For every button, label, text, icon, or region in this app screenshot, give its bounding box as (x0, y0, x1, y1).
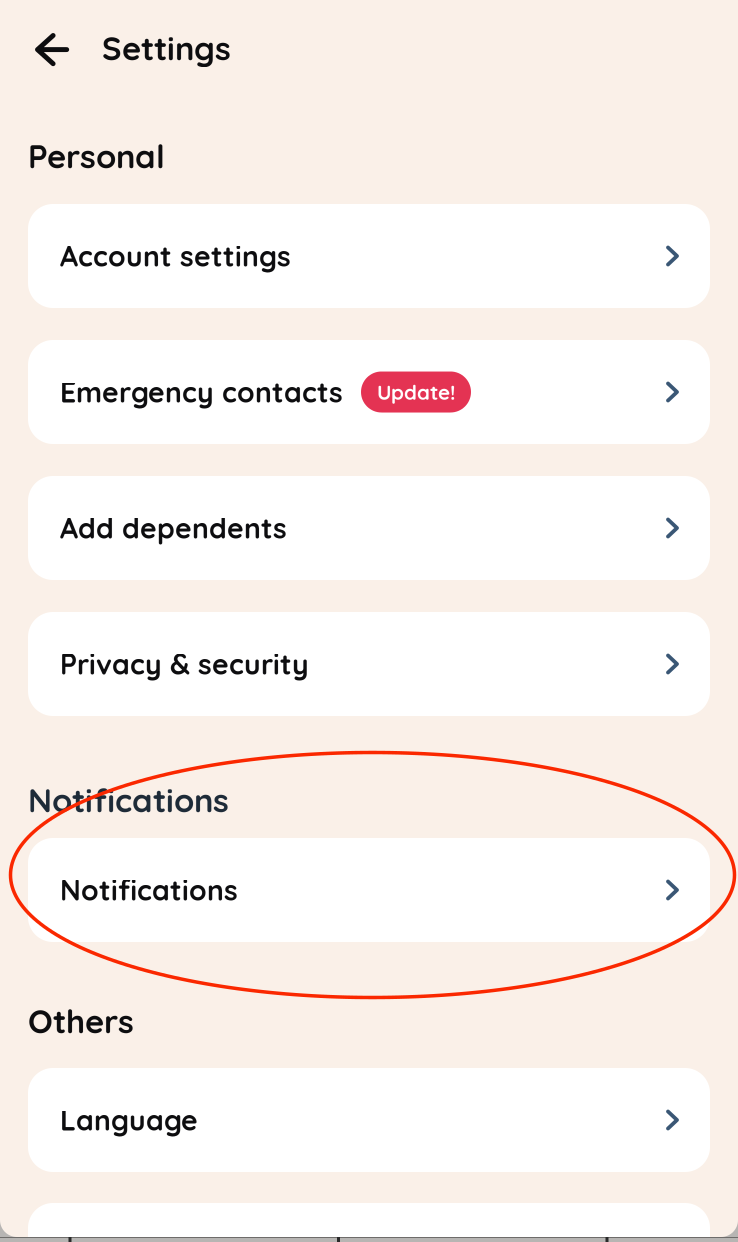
staticText: Update! (377, 379, 455, 405)
staticText: Add dependents (60, 510, 287, 546)
button[interactable]: Back (21, 21, 83, 79)
button[interactable]: Help & support (28, 1203, 710, 1242)
button[interactable]: Privacy & security (28, 612, 710, 716)
staticText: Personal (28, 136, 165, 176)
staticText: Help & support (60, 1237, 268, 1242)
staticText: Settings (102, 28, 231, 68)
staticText: Notifications (28, 780, 229, 820)
button[interactable]: Account settings (28, 204, 710, 308)
button[interactable]: Emergency contacts (28, 340, 710, 444)
staticText: Others (28, 1001, 134, 1041)
staticText: Privacy & security (60, 646, 309, 682)
button[interactable]: Notifications (28, 838, 710, 942)
button[interactable]: Add dependents (28, 476, 710, 580)
button[interactable]: Language (28, 1068, 710, 1172)
staticText: Language (60, 1102, 198, 1138)
staticText: Emergency contacts (60, 374, 343, 410)
staticText: Account settings (60, 238, 291, 274)
staticText: Notifications (60, 872, 238, 908)
